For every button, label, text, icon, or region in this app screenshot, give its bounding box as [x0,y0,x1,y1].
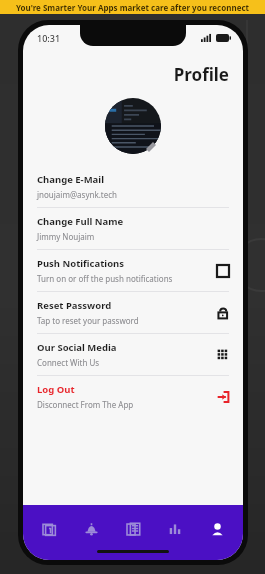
button[interactable]: Profile [201,513,233,545]
staticText: Jimmy Noujaim [37,231,95,242]
button[interactable]: Stats [159,513,191,545]
staticText: Disconnect From The App [37,399,134,410]
staticText: Turn on or off the push notifications [37,273,173,284]
staticText: Change E-Mail [37,173,104,186]
other: Reset password [217,307,229,319]
staticText: Reset Password [37,299,112,312]
staticText: 10:31 [37,32,61,44]
button[interactable]: Push Notifications [23,250,243,292]
staticText: Our Social Media [37,341,117,354]
button[interactable]: Our Social Media [23,334,243,376]
button[interactable]: Change E-Mail [23,166,243,208]
staticText: Tap to reset your password [37,315,139,326]
other: Log out [217,391,229,403]
staticText: Connect With Us [37,357,100,368]
staticText: You're Smarter Your Apps market care aft… [0,2,265,13]
button[interactable]: Articles [117,513,149,545]
button[interactable]: Notifications [75,513,107,545]
staticText: Profile [23,63,229,86]
other: Toggle push notifications [217,265,229,277]
staticText: jnoujaim@asynk.tech [37,189,118,200]
button[interactable]: Reset Password [23,292,243,334]
staticText: Change Full Name [37,215,124,228]
button[interactable]: Change Full Name [23,208,243,250]
staticText: Push Notifications [37,257,125,270]
other: Our social media [217,349,229,361]
staticText: Log Out [37,383,75,396]
button[interactable]: Cards [33,513,65,545]
button[interactable]: Log Out [23,376,243,417]
